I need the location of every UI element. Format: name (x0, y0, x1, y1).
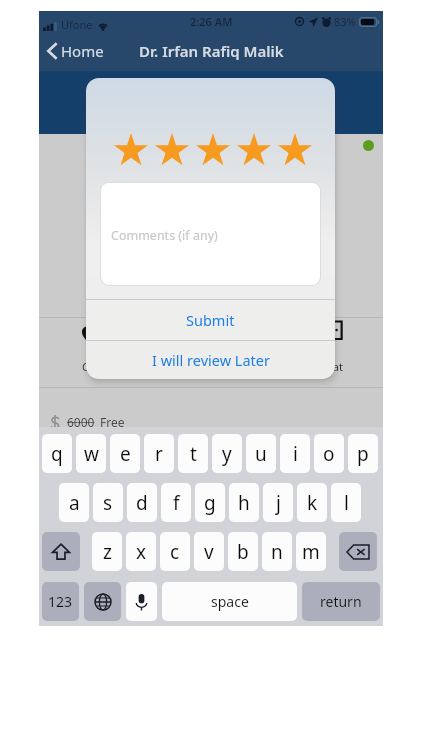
staticText: space (211, 592, 249, 611)
button[interactable]: Dictate (126, 582, 157, 621)
staticText: x (136, 539, 147, 565)
button[interactable]: c (160, 532, 190, 571)
staticText: z (103, 539, 112, 565)
staticText: y (222, 441, 232, 467)
button[interactable]: Rate 2 stars (155, 133, 196, 165)
staticText: I will review Later (152, 350, 270, 370)
staticText: s (103, 490, 113, 516)
staticText: h (238, 490, 250, 516)
staticText: Book (239, 359, 266, 374)
button[interactable]: e (110, 434, 140, 473)
button[interactable]: Call (56, 320, 126, 374)
staticText: Dr. Irfan Rafiq Malik (139, 41, 284, 61)
staticText: p (357, 441, 369, 467)
staticText: k (307, 490, 318, 516)
button[interactable]: h (229, 483, 259, 522)
staticText: n (271, 539, 283, 565)
staticText: Ufone (61, 17, 93, 32)
staticText: c (170, 539, 180, 565)
staticText: v (204, 539, 214, 565)
button[interactable]: 123 (42, 582, 79, 621)
button[interactable]: q (42, 434, 72, 473)
button[interactable]: Shift (42, 532, 80, 571)
button[interactable]: b (228, 532, 258, 571)
staticText: l (344, 490, 349, 516)
button[interactable]: z (92, 532, 122, 571)
button[interactable]: Delete (339, 532, 377, 571)
staticText: r (155, 441, 163, 467)
staticText: Chat (319, 359, 343, 374)
button[interactable]: y (212, 434, 242, 473)
button[interactable]: Comments (if any) (101, 183, 320, 285)
staticText: q (51, 441, 63, 467)
staticText: d (136, 490, 148, 516)
button[interactable]: space (162, 582, 297, 621)
button[interactable]: l (331, 483, 361, 522)
staticText: e (120, 441, 131, 467)
button[interactable]: k (297, 483, 327, 522)
staticText: m (302, 539, 320, 565)
button[interactable]: Book (217, 320, 287, 374)
staticText: 123 (48, 592, 73, 611)
button[interactable]: I will review Later (86, 341, 335, 379)
button[interactable]: p (348, 434, 378, 473)
staticText: 6000 (67, 414, 95, 430)
staticText: t (190, 441, 197, 467)
staticText: b (237, 539, 249, 565)
button[interactable]: Home (39, 35, 112, 67)
button[interactable]: Submit (86, 300, 335, 340)
button[interactable]: Rate 3 stars (196, 133, 237, 165)
button[interactable]: g (195, 483, 225, 522)
staticText: j (276, 490, 281, 516)
button[interactable]: a (59, 483, 89, 522)
button[interactable]: Rate 4 stars (237, 133, 278, 165)
staticText: 2:26 AM (190, 14, 233, 29)
button[interactable]: Rate 1 stars (114, 133, 155, 165)
staticText: o (323, 441, 335, 467)
button[interactable]: o (314, 434, 344, 473)
button[interactable]: Change keyboard (84, 582, 121, 621)
button[interactable]: t (178, 434, 208, 473)
button[interactable]: x (126, 532, 156, 571)
button[interactable]: f (161, 483, 191, 522)
button[interactable]: m (296, 532, 326, 571)
staticText: w (84, 441, 99, 467)
button[interactable]: Rate 5 stars (278, 133, 319, 165)
button[interactable]: w (76, 434, 106, 473)
staticText: Call (82, 359, 101, 374)
staticText: Free (100, 414, 125, 430)
staticText: Submit (186, 310, 235, 330)
staticText: a (69, 490, 80, 516)
staticText: g (204, 490, 216, 516)
staticText: i (293, 441, 298, 467)
button[interactable]: n (262, 532, 292, 571)
button[interactable]: return (302, 582, 380, 621)
button[interactable]: i (280, 434, 310, 473)
staticText: return (320, 592, 362, 611)
button[interactable]: d (127, 483, 157, 522)
button[interactable]: Video (136, 320, 206, 374)
button[interactable]: Chat (296, 320, 366, 374)
staticText: Video (156, 359, 186, 374)
button[interactable]: u (246, 434, 276, 473)
button[interactable]: r (144, 434, 174, 473)
staticText: Comments (if any) (111, 227, 218, 244)
button[interactable]: j (263, 483, 293, 522)
button[interactable]: v (194, 532, 224, 571)
staticText: u (255, 441, 267, 467)
staticText: f (173, 490, 180, 516)
staticText: 83% (334, 14, 356, 29)
staticText: Home (61, 41, 104, 61)
button[interactable]: s (93, 483, 123, 522)
